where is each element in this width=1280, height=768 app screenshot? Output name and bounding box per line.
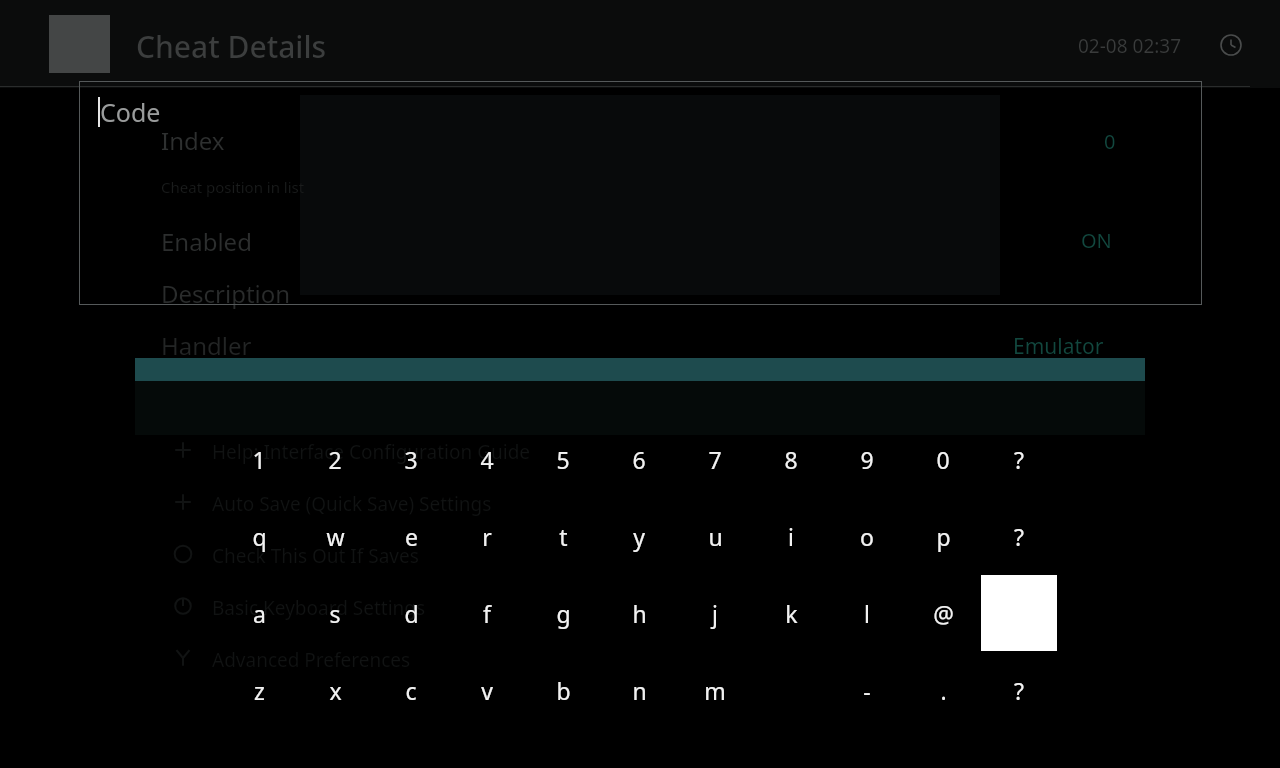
button[interactable]: 4 bbox=[449, 421, 525, 497]
staticText: z bbox=[254, 675, 265, 706]
button[interactable]: d bbox=[373, 575, 449, 651]
button[interactable]: 6 bbox=[601, 421, 677, 497]
button[interactable]: b bbox=[525, 652, 601, 728]
staticText: u bbox=[708, 521, 723, 552]
staticText: Cheat Details bbox=[136, 26, 327, 67]
staticText: d bbox=[404, 598, 419, 629]
staticText: 4 bbox=[480, 444, 494, 475]
button[interactable]: s bbox=[297, 575, 373, 651]
button[interactable]: ? bbox=[981, 652, 1057, 728]
staticText: k bbox=[785, 598, 798, 629]
staticText: s bbox=[329, 598, 341, 629]
button[interactable]: @ bbox=[905, 575, 981, 651]
button[interactable]: 5 bbox=[525, 421, 601, 497]
staticText: n bbox=[632, 675, 647, 706]
button[interactable]: w bbox=[297, 498, 373, 574]
button[interactable]: o bbox=[829, 498, 905, 574]
staticText: b bbox=[556, 675, 571, 706]
button[interactable]: j bbox=[677, 575, 753, 651]
button[interactable]: 1 bbox=[221, 421, 297, 497]
staticText: t bbox=[559, 521, 568, 552]
staticText: Cheat position in list bbox=[161, 177, 305, 197]
staticText: - bbox=[863, 675, 871, 706]
button[interactable]: g bbox=[525, 575, 601, 651]
staticText: x bbox=[329, 675, 342, 706]
button[interactable]: z bbox=[221, 652, 297, 728]
staticText: y bbox=[633, 521, 645, 552]
button[interactable]: . bbox=[905, 652, 981, 728]
staticText: 1 bbox=[252, 444, 266, 475]
staticText: @ bbox=[933, 598, 954, 629]
staticText: Basic Keyboard Settings bbox=[212, 595, 426, 621]
button[interactable]: ? bbox=[981, 421, 1057, 497]
button[interactable]: Code bbox=[79, 81, 1202, 305]
button[interactable]: i bbox=[753, 498, 829, 574]
button[interactable]: k bbox=[753, 575, 829, 651]
button[interactable]: r bbox=[449, 498, 525, 574]
button[interactable]: h bbox=[601, 575, 677, 651]
staticText: 02-08 02:37 bbox=[1078, 33, 1182, 59]
staticText: Code bbox=[100, 95, 161, 129]
staticText: f bbox=[483, 598, 491, 629]
staticText: l bbox=[864, 598, 870, 629]
staticText: h bbox=[632, 598, 647, 629]
staticText: o bbox=[860, 521, 874, 552]
staticText: g bbox=[556, 598, 571, 629]
staticText: a bbox=[253, 598, 266, 629]
staticText: ? bbox=[1014, 444, 1024, 475]
staticText: Advanced Preferences bbox=[212, 647, 411, 673]
staticText: Index bbox=[161, 124, 225, 157]
button[interactable]: x bbox=[297, 652, 373, 728]
staticText: Auto Save (Quick Save) Settings bbox=[212, 491, 492, 517]
button[interactable]: a bbox=[221, 575, 297, 651]
button[interactable]: p bbox=[905, 498, 981, 574]
staticText: r bbox=[482, 521, 492, 552]
button[interactable]: e bbox=[373, 498, 449, 574]
staticText: w bbox=[326, 521, 345, 552]
staticText: c bbox=[405, 675, 417, 706]
button[interactable]: l bbox=[829, 575, 905, 651]
staticText: 7 bbox=[708, 444, 722, 475]
button[interactable]: u bbox=[677, 498, 753, 574]
button[interactable]: 0 bbox=[905, 421, 981, 497]
staticText: 2 bbox=[328, 444, 342, 475]
button[interactable]: c bbox=[373, 652, 449, 728]
button[interactable]: y bbox=[601, 498, 677, 574]
button[interactable]: Clock bbox=[1220, 34, 1242, 56]
button[interactable]: - bbox=[829, 652, 905, 728]
staticText: m bbox=[704, 675, 726, 706]
staticText: i bbox=[788, 521, 794, 552]
button[interactable]: 9 bbox=[829, 421, 905, 497]
button[interactable]: 7 bbox=[677, 421, 753, 497]
staticText: q bbox=[252, 521, 267, 552]
staticText: . bbox=[940, 675, 947, 706]
staticText: ? bbox=[1014, 675, 1024, 706]
staticText: 6 bbox=[632, 444, 646, 475]
button[interactable]: ? bbox=[981, 498, 1057, 574]
staticText: Enabled bbox=[161, 225, 252, 258]
staticText: 0 bbox=[1104, 128, 1116, 155]
button[interactable]: f bbox=[449, 575, 525, 651]
staticText: 0 bbox=[936, 444, 950, 475]
button[interactable]: m bbox=[677, 652, 753, 728]
button[interactable]: 2 bbox=[297, 421, 373, 497]
staticText: ON bbox=[1081, 227, 1112, 254]
button[interactable]: 8 bbox=[753, 421, 829, 497]
staticText: 5 bbox=[556, 444, 570, 475]
staticText: v bbox=[481, 675, 493, 706]
button[interactable]: v bbox=[449, 652, 525, 728]
button[interactable]: 3 bbox=[373, 421, 449, 497]
staticText: Check This Out If Saves bbox=[212, 543, 419, 569]
button[interactable]: q bbox=[221, 498, 297, 574]
button[interactable]: n bbox=[601, 652, 677, 728]
staticText: Emulator bbox=[1013, 332, 1104, 361]
staticText: Help: Interface Configuration Guide bbox=[212, 439, 531, 465]
staticText: Handler bbox=[161, 329, 252, 362]
button[interactable]: t bbox=[525, 498, 601, 574]
staticText: ? bbox=[1014, 521, 1024, 552]
